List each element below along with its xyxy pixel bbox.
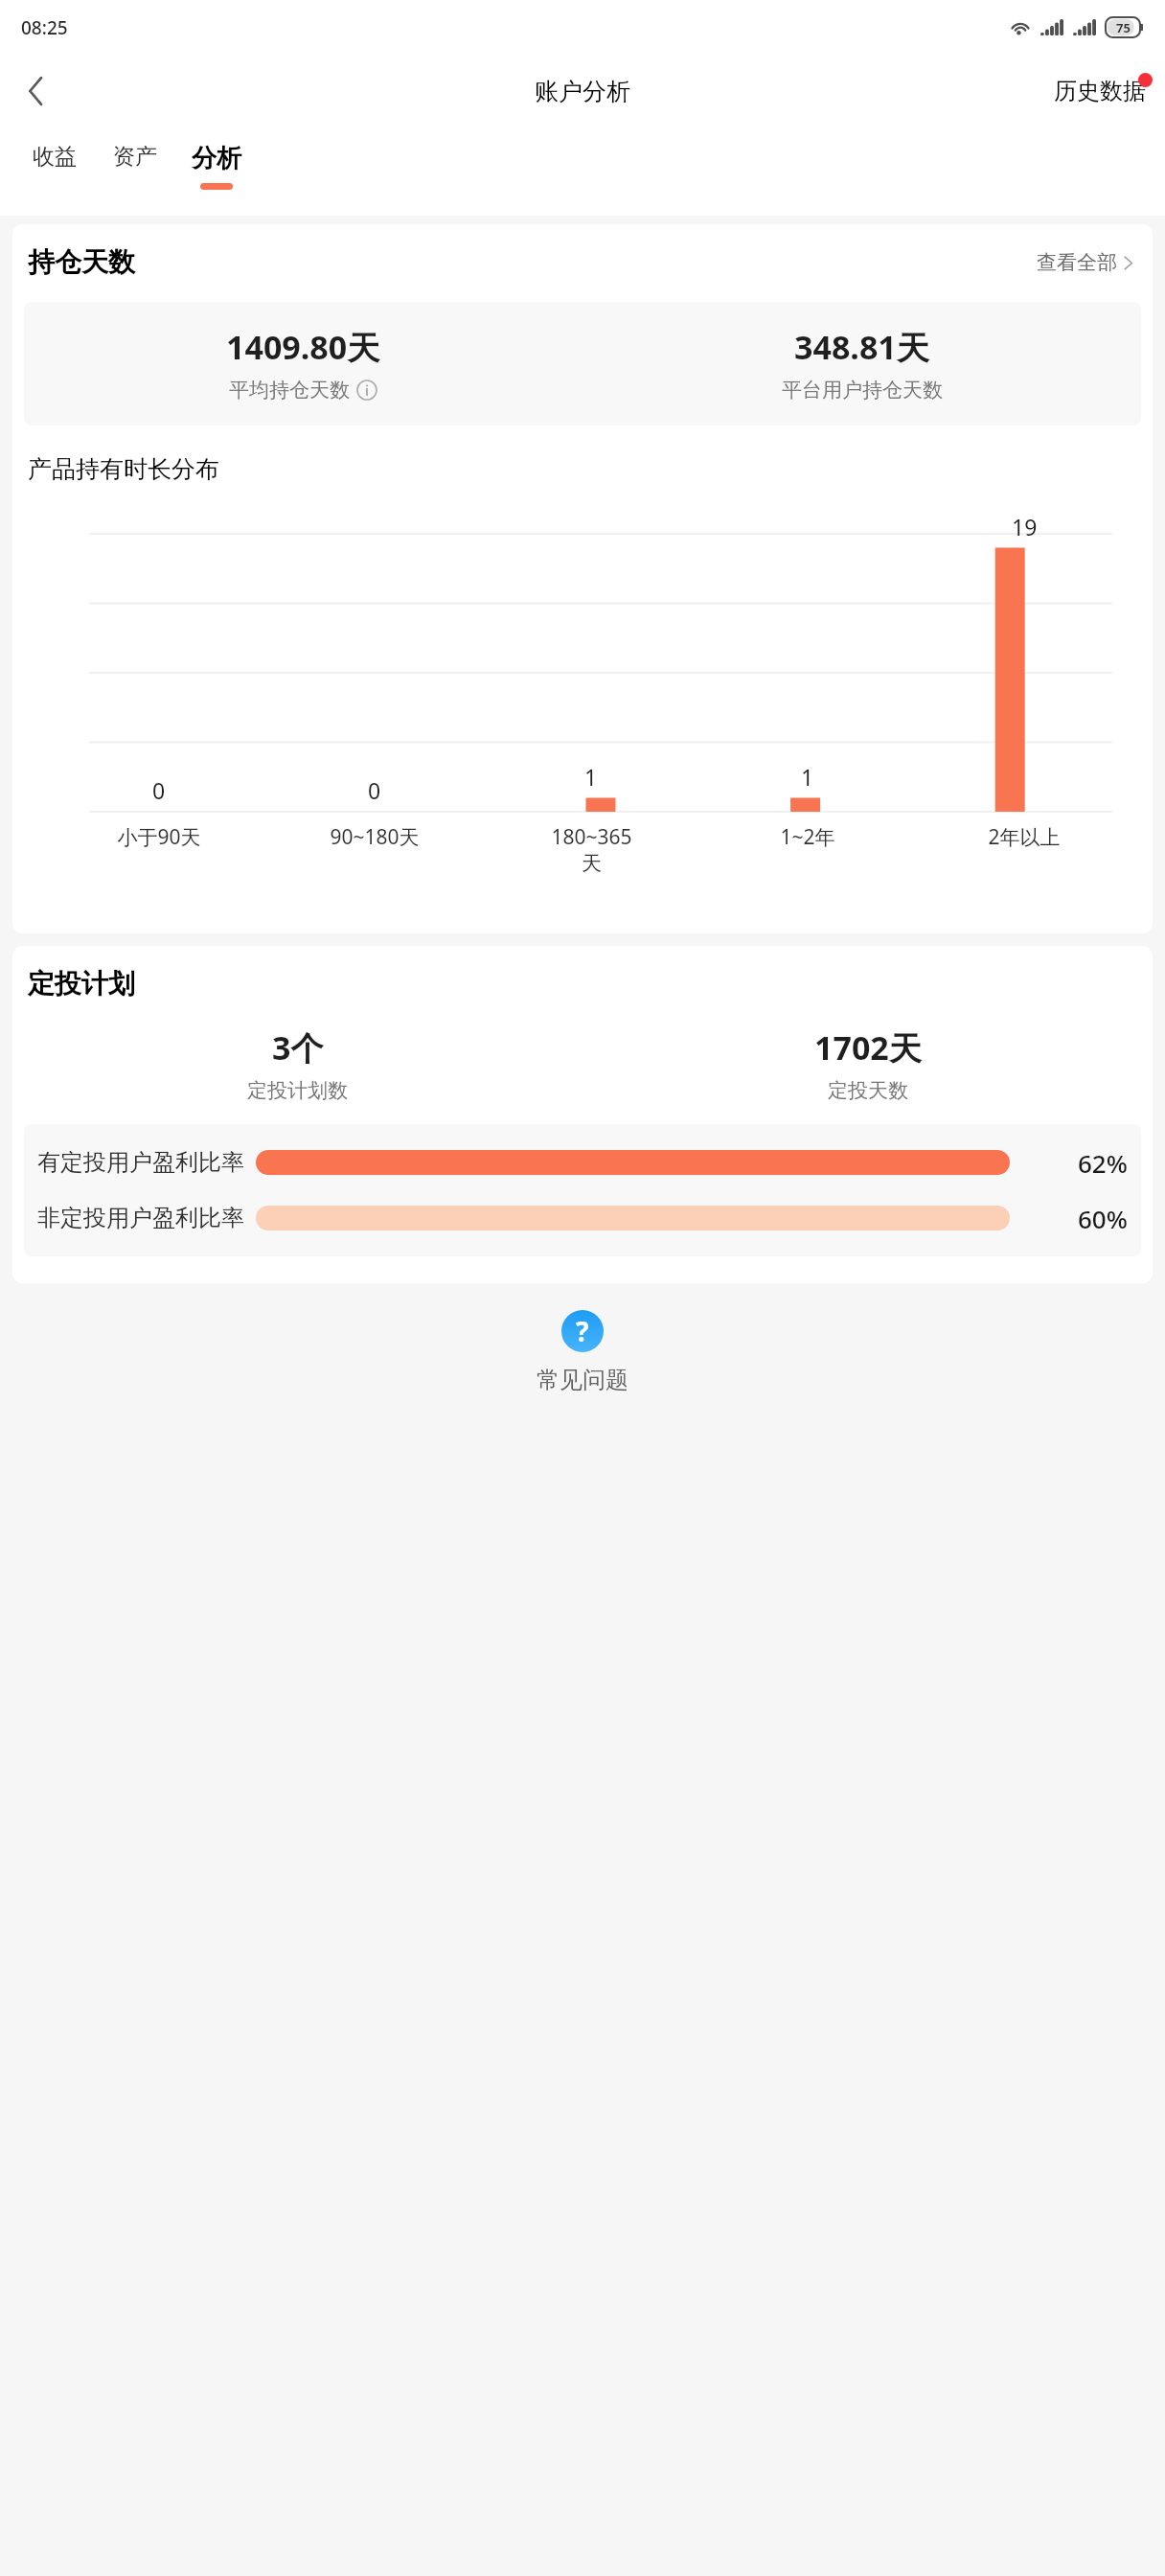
staticText: 收益	[33, 143, 77, 171]
staticText: 1~2年	[780, 823, 835, 851]
button[interactable]: 查看全部	[1033, 246, 1137, 279]
staticText: 90~180天	[330, 823, 420, 851]
staticText: 持仓天数	[28, 245, 135, 279]
button[interactable]: 分析	[184, 127, 249, 216]
staticText: 0	[152, 775, 166, 805]
staticText: 历史数据	[1054, 77, 1146, 105]
staticText: 19	[1012, 512, 1038, 541]
staticText: 小于90天	[117, 823, 201, 851]
staticText: 0	[368, 775, 381, 805]
staticText: 1	[584, 762, 598, 792]
staticText: 定投计划数	[247, 1078, 348, 1103]
staticText: 180~365 天	[551, 823, 632, 876]
staticText: 1702天	[814, 1025, 922, 1069]
button[interactable]: ?	[0, 1310, 1165, 1394]
staticText: 60%	[1078, 1202, 1128, 1235]
staticText: ?	[576, 1313, 589, 1349]
staticText: 75	[1116, 19, 1131, 36]
staticText: 有定投用户盈利比率	[37, 1148, 244, 1177]
staticText: 348.81天	[794, 325, 929, 369]
button[interactable]: 说明	[356, 379, 377, 401]
staticText: 平均持仓天数	[229, 378, 350, 402]
staticText: 1409.80天	[226, 325, 380, 369]
staticText: 2年以上	[988, 823, 1061, 851]
staticText: 产品持有时长分布	[28, 454, 219, 484]
staticText: 分析	[192, 143, 241, 174]
staticText: 1	[801, 762, 814, 792]
staticText: 资产	[113, 143, 157, 171]
button[interactable]: 资产	[105, 127, 165, 216]
staticText: 非定投用户盈利比率	[37, 1204, 244, 1232]
staticText: 08:25	[21, 15, 68, 40]
button[interactable]: 历史数据	[1048, 67, 1152, 115]
staticText: 定投天数	[828, 1078, 908, 1103]
staticText: 查看全部	[1037, 250, 1117, 275]
staticText: 定投计划	[28, 967, 135, 1000]
staticText: 3个	[272, 1025, 324, 1069]
staticText: 平台用户持仓天数	[782, 378, 943, 402]
button[interactable]: 收益	[25, 127, 84, 216]
staticText: 账户分析	[535, 77, 630, 106]
button[interactable]: Back	[8, 63, 63, 119]
staticText: 常见问题	[537, 1366, 628, 1394]
staticText: 62%	[1078, 1146, 1128, 1180]
